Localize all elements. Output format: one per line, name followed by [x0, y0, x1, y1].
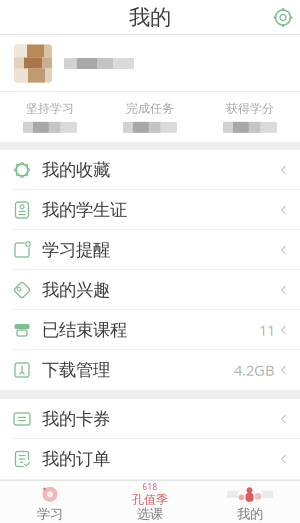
- button[interactable]: 我的收藏: [0, 150, 300, 190]
- staticText: 我的学生证: [42, 199, 127, 221]
- staticText: 获得学分: [226, 101, 274, 116]
- staticText: 学习提醒: [42, 239, 110, 261]
- staticText: 我的卡券: [42, 408, 110, 430]
- staticText: 我的: [237, 506, 263, 522]
- staticText: 孔值季: [132, 492, 168, 507]
- staticText: 下载管理: [42, 359, 110, 381]
- staticText: 完成任务: [126, 101, 174, 116]
- staticText: 选课: [137, 506, 163, 522]
- staticText: 4.2GB: [234, 360, 275, 380]
- staticText: 我的兴趣: [42, 279, 110, 301]
- button[interactable]: 我的学生证: [0, 190, 300, 230]
- staticText: 已结束课程: [42, 319, 127, 341]
- button[interactable]: 已结束课程: [0, 310, 300, 350]
- button[interactable]: [0, 35, 300, 92]
- button[interactable]: Settings: [266, 0, 300, 34]
- button[interactable]: 学习提醒: [0, 230, 300, 270]
- button[interactable]: 618: [100, 481, 200, 522]
- button[interactable]: 我的卡券: [0, 399, 300, 439]
- staticText: 坚持学习: [26, 101, 74, 116]
- staticText: 11: [259, 320, 275, 340]
- button[interactable]: 获得学分: [200, 101, 300, 133]
- button[interactable]: 坚持学习: [0, 101, 100, 133]
- staticText: 学习: [37, 506, 63, 522]
- button[interactable]: 完成任务: [100, 101, 200, 133]
- button[interactable]: 我的: [200, 481, 300, 522]
- button[interactable]: 我的订单: [0, 439, 300, 479]
- staticText: 我的: [129, 4, 171, 31]
- button[interactable]: 下载管理: [0, 350, 300, 390]
- staticText: 我的收藏: [42, 159, 110, 181]
- button[interactable]: 学习: [0, 481, 100, 522]
- staticText: 618: [142, 482, 157, 492]
- button[interactable]: 我的兴趣: [0, 270, 300, 310]
- staticText: 我的订单: [42, 448, 110, 470]
